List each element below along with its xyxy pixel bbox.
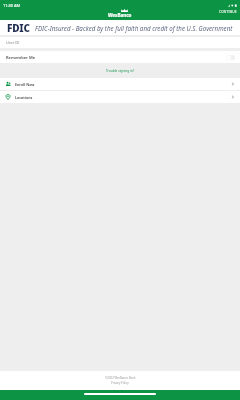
staticText: FDIC-Insured - Backed by the full faith … [35,24,233,32]
button[interactable]: Enroll Now [0,78,240,90]
button[interactable]: User ID [0,37,240,48]
staticText: WesBanco [108,12,132,18]
staticText: Enroll Now [15,82,35,87]
staticText: FDIC [7,21,30,35]
staticText: Privacy Policy [111,381,129,385]
staticText: CONTINUE [219,10,237,14]
staticText: ©2022 WesBanco Bank [105,376,136,380]
staticText: Trouble signing in? [106,69,135,73]
button[interactable]: Privacy Policy [111,381,129,385]
button[interactable]: Remember Me toggle [226,55,235,60]
button[interactable]: Locations [0,91,240,103]
staticText: Locations [15,95,33,100]
button[interactable]: Trouble signing in? [104,67,137,75]
button[interactable]: CONTINUE [216,9,240,15]
staticText: Remember Me [6,55,36,60]
staticText: User ID [6,40,20,45]
staticText: 11:30 AM [3,3,20,8]
